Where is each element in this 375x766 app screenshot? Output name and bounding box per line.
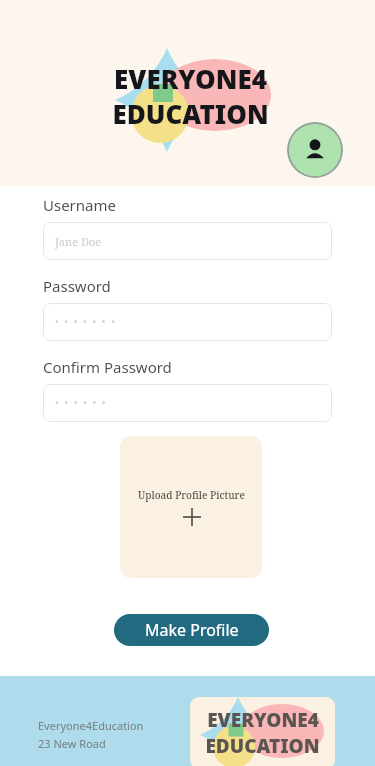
button[interactable]: Password (43, 303, 332, 341)
button[interactable]: Profile (287, 122, 343, 178)
staticText: Upload Profile Picture (138, 488, 245, 502)
staticText: EVERYONE4 (207, 707, 319, 733)
staticText: • • • • • • (55, 396, 108, 410)
staticText: Make Profile (145, 619, 239, 641)
staticText: Password (43, 276, 111, 296)
staticText: Confirm Password (43, 357, 172, 377)
staticText: • • • • • • • (55, 315, 117, 329)
button[interactable]: Upload Profile Picture (120, 436, 262, 578)
staticText: Everyone4Education (38, 718, 144, 733)
button[interactable]: Confirm Password (43, 384, 332, 422)
staticText: Jane Doe (55, 234, 102, 249)
staticText: EVERYONE4 (114, 61, 267, 96)
staticText: Username (43, 195, 116, 215)
staticText: EDUCATION (205, 733, 320, 759)
button[interactable]: Username (43, 222, 332, 260)
staticText: EDUCATION (112, 96, 269, 131)
button[interactable]: Make Profile (114, 614, 269, 646)
button[interactable]: Everyone4Education logo (190, 697, 335, 766)
staticText: 23 New Road (38, 736, 106, 751)
